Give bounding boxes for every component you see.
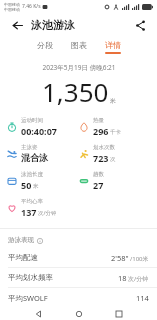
staticText: 分段 bbox=[37, 40, 53, 50]
button[interactable]: Share bbox=[131, 16, 149, 34]
staticText: /100米 bbox=[130, 255, 149, 263]
button[interactable]: 划水次数 bbox=[78, 144, 116, 164]
button[interactable]: 平均配速 bbox=[0, 248, 157, 267]
staticText: 次 bbox=[110, 156, 116, 163]
staticText: 千卡 bbox=[110, 129, 121, 136]
staticText: 平均心率 bbox=[21, 198, 43, 205]
button[interactable]: Info bbox=[36, 237, 43, 244]
button[interactable]: 详情 bbox=[102, 40, 124, 54]
staticText: 划水次数 bbox=[93, 144, 115, 151]
button[interactable]: Back bbox=[26, 307, 52, 320]
staticText: 296 bbox=[93, 125, 109, 137]
staticText: 热量 bbox=[93, 117, 104, 124]
staticText: 中国移动 bbox=[4, 7, 20, 12]
staticText: 主泳姿 bbox=[21, 144, 38, 151]
staticText: 50 bbox=[21, 179, 32, 191]
button[interactable]: 主泳姿 bbox=[6, 144, 48, 163]
staticText: 27 bbox=[93, 179, 104, 191]
staticText: 2023年5月19日 傍晚6:21 bbox=[42, 63, 116, 72]
staticText: 米 bbox=[110, 97, 116, 105]
button[interactable]: 分段 bbox=[34, 40, 56, 54]
button[interactable]: 趟数 bbox=[78, 171, 104, 191]
staticText: 7.46 K/s bbox=[22, 3, 41, 10]
button[interactable]: 平均心率 bbox=[6, 198, 57, 218]
button[interactable]: 泳池长度 bbox=[6, 171, 43, 191]
button[interactable]: 运动时间 bbox=[6, 117, 57, 137]
staticText: 1,350 bbox=[42, 74, 109, 109]
staticText: 次/分钟 bbox=[38, 209, 57, 217]
staticText: 平均配速 bbox=[8, 253, 38, 262]
staticText: 趟数 bbox=[93, 171, 104, 178]
staticText: 137 bbox=[21, 206, 37, 218]
staticText: 723 bbox=[93, 152, 109, 164]
button[interactable]: Recents bbox=[106, 307, 132, 320]
button[interactable]: 平均SWOLF bbox=[0, 288, 157, 307]
staticText: 中国移动 bbox=[4, 2, 20, 7]
staticText: 114 bbox=[136, 293, 149, 303]
staticText: 图表 bbox=[71, 40, 87, 50]
staticText: 18 bbox=[118, 273, 127, 283]
staticText: 平均SWOLF bbox=[8, 293, 48, 303]
staticText: 泳池长度 bbox=[21, 171, 43, 178]
staticText: 泳池游泳 bbox=[31, 18, 75, 32]
staticText: 详情 bbox=[105, 40, 121, 50]
staticText: 2'58" bbox=[111, 253, 129, 263]
staticText: 00:40:07 bbox=[21, 125, 57, 137]
staticText: 米 bbox=[33, 183, 39, 190]
button[interactable]: 热量 bbox=[78, 117, 121, 137]
button[interactable]: 图表 bbox=[68, 40, 90, 54]
staticText: 平均划水频率 bbox=[8, 273, 53, 282]
button[interactable]: Home bbox=[66, 307, 92, 320]
staticText: 游泳表现 bbox=[8, 236, 34, 244]
button[interactable]: 平均划水频率 bbox=[0, 268, 157, 287]
staticText: 混合泳 bbox=[21, 152, 48, 163]
staticText: 运动时间 bbox=[21, 117, 43, 124]
staticText: 次/分钟 bbox=[128, 275, 149, 283]
button[interactable]: Back bbox=[8, 16, 26, 34]
